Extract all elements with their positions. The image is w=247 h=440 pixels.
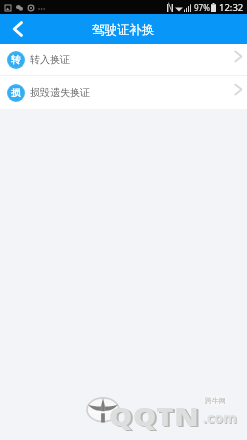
button[interactable]: 损 (0, 76, 247, 109)
staticText: 转 (11, 54, 21, 66)
staticText: QQTN (111, 401, 202, 434)
staticText: 12:32 (219, 1, 244, 14)
button[interactable]: 转 (0, 44, 247, 75)
staticText: 跨牛网 (205, 396, 226, 405)
staticText: 97% (194, 2, 210, 13)
staticText: 损毁遗失换证 (30, 86, 90, 99)
button[interactable]: Back (0, 14, 30, 44)
staticText: QQTN (109, 400, 200, 433)
staticText: .com (203, 408, 237, 427)
staticText: 转入换证 (30, 53, 70, 66)
staticText: .com (204, 409, 238, 428)
staticText: 驾驶证补换 (92, 22, 155, 38)
staticText: 损 (11, 87, 21, 99)
